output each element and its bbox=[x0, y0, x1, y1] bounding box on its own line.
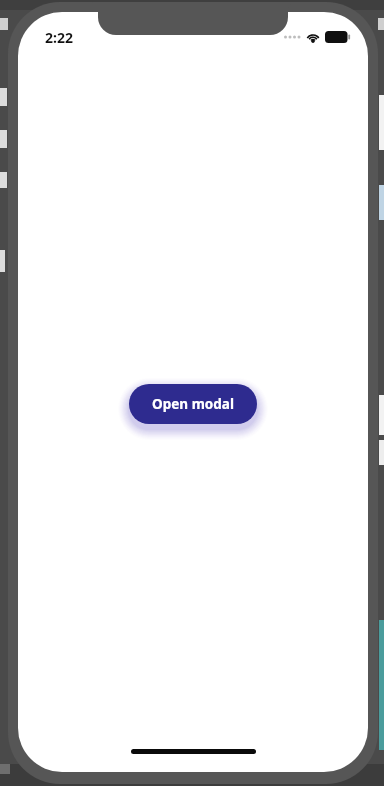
staticText: 2:22 bbox=[45, 28, 73, 47]
staticText: Open modal bbox=[152, 395, 234, 413]
button[interactable]: Open modal bbox=[129, 384, 257, 424]
